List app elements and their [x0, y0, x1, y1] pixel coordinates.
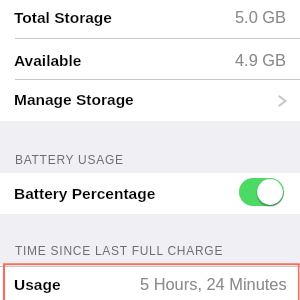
button[interactable]: Usage — [0, 264, 300, 300]
staticText: 5 Hours, 24 Minutes — [140, 275, 287, 293]
button[interactable]: TIME SINCE LAST FULL CHARGE — [15, 244, 224, 257]
staticText: 4.9 GB — [235, 51, 287, 69]
button[interactable]: Total Storage — [0, 0, 300, 39]
button[interactable]: BATTERY USAGE — [15, 153, 124, 166]
staticText: Total Storage — [14, 9, 112, 26]
button[interactable]: Available — [0, 39, 300, 81]
button[interactable]: Battery Percentage switch, on — [239, 178, 284, 206]
staticText: Available — [14, 52, 82, 69]
staticText: 5.0 GB — [235, 8, 287, 26]
staticText: TIME SINCE LAST FULL CHARGE — [15, 244, 224, 257]
other: Open Manage Storage — [278, 94, 287, 108]
staticText: Battery Percentage — [14, 185, 156, 202]
staticText: Usage — [14, 276, 61, 293]
staticText: Manage Storage — [14, 91, 134, 108]
button[interactable]: Manage Storage — [0, 77, 300, 121]
button[interactable]: Battery Percentage — [0, 173, 300, 214]
staticText: BATTERY USAGE — [15, 153, 124, 166]
